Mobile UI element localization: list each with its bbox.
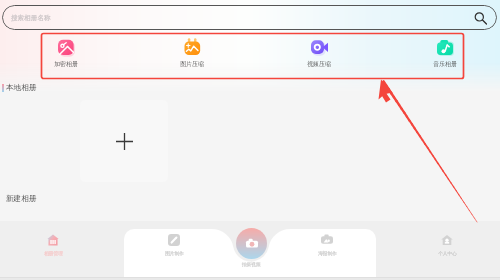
staticText: 海报制作 <box>318 250 337 256</box>
button[interactable]: 搜索 <box>473 11 487 25</box>
button[interactable]: 图片压缩 <box>164 39 220 67</box>
button[interactable]: 加密相册 <box>38 39 94 67</box>
button[interactable]: 视频压缩 <box>291 39 347 67</box>
staticText: 图片压缩 <box>180 60 204 67</box>
staticText: 拍摄视频 <box>231 261 271 267</box>
button[interactable]: 拍摄视频 <box>236 228 267 259</box>
button[interactable]: 新建相册 <box>80 100 168 182</box>
staticText: 搜索相册名称 <box>11 14 51 22</box>
staticText: 图片制作 <box>165 250 184 256</box>
button[interactable]: 图片制作 <box>152 234 196 256</box>
button[interactable]: 海报制作 <box>305 234 349 256</box>
staticText: 音乐相册 <box>433 60 457 67</box>
staticText: 视频压缩 <box>307 60 331 67</box>
button[interactable]: 搜索相册名称 <box>2 5 497 30</box>
button[interactable]: 个人中心 <box>425 234 469 256</box>
staticText: 本地相册 <box>6 83 37 93</box>
button[interactable]: 音乐相册 <box>417 39 473 67</box>
staticText: 加密相册 <box>54 60 78 67</box>
staticText: 新建相册 <box>6 194 37 204</box>
staticText: 个人中心 <box>438 250 457 256</box>
button[interactable]: 相册管理 <box>31 234 75 256</box>
staticText: 相册管理 <box>44 250 63 256</box>
